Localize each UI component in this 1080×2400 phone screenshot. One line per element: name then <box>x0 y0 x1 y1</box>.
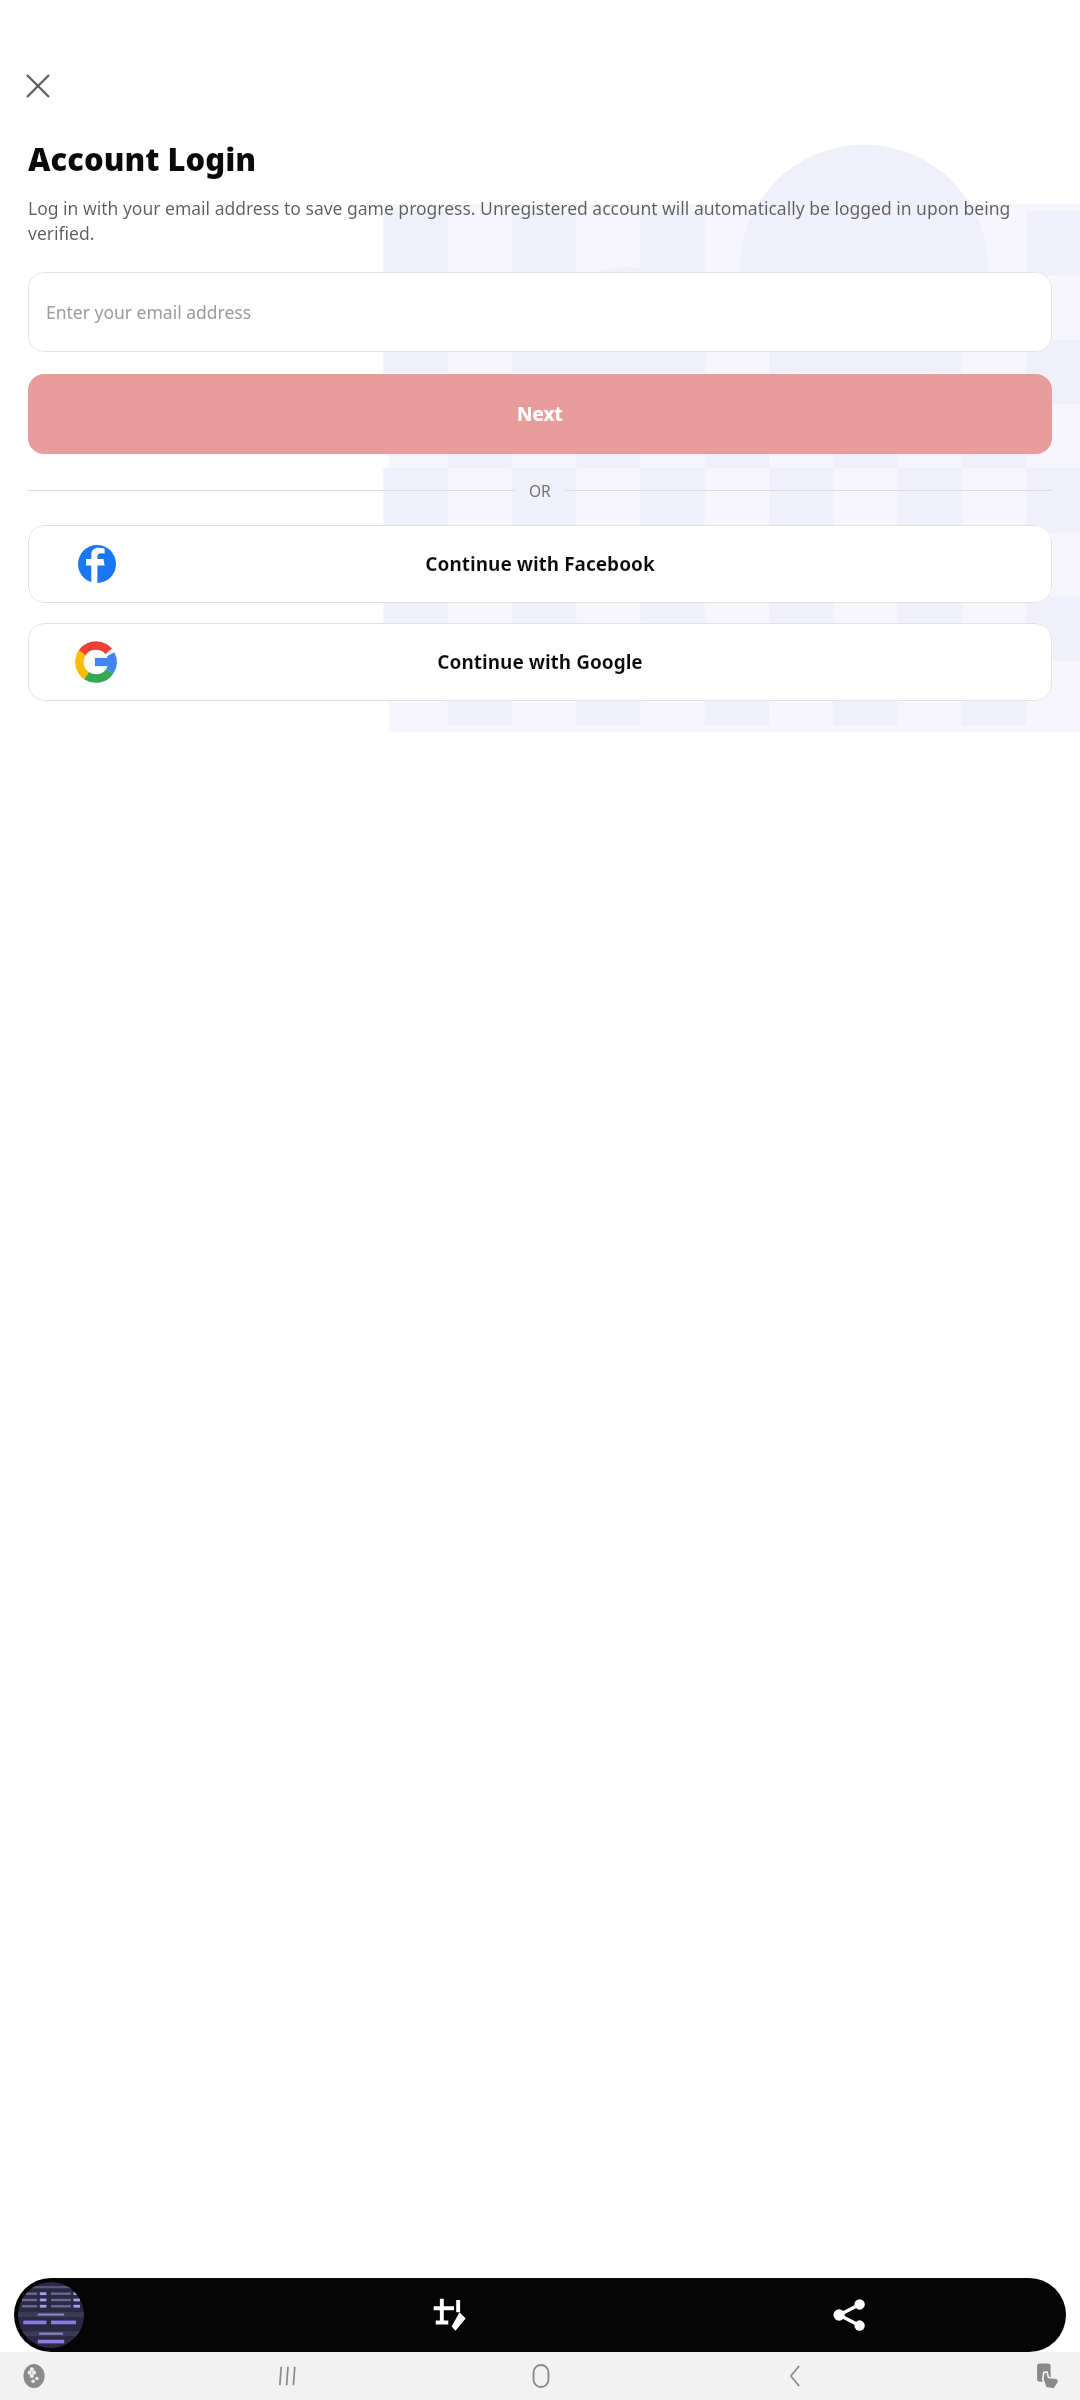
button[interactable]: Close <box>14 62 62 110</box>
button[interactable]: Screenshot preview <box>18 2282 84 2348</box>
button[interactable]: Next <box>28 374 1052 454</box>
button[interactable]: Crop and edit <box>416 2281 484 2349</box>
button[interactable]: Continue with Google <box>28 623 1052 701</box>
button[interactable]: Share <box>816 2281 884 2349</box>
button[interactable]: Game tools <box>12 2354 56 2398</box>
button[interactable]: Enter your email address <box>28 272 1052 352</box>
staticText: Continue with Google <box>437 649 643 675</box>
staticText: Log in with your email address to save g… <box>28 196 1054 246</box>
button[interactable]: Continue with Facebook <box>28 525 1052 603</box>
staticText: Continue with Facebook <box>425 551 655 577</box>
staticText: Next <box>517 401 563 427</box>
button[interactable]: Back <box>772 2352 820 2400</box>
button[interactable]: One handed mode <box>1026 2354 1070 2398</box>
button[interactable]: Recent apps <box>263 2352 311 2400</box>
staticText: Enter your email address <box>46 300 252 324</box>
staticText: Account Login <box>28 138 257 180</box>
staticText: OR <box>529 480 551 501</box>
button[interactable]: Home <box>517 2352 565 2400</box>
